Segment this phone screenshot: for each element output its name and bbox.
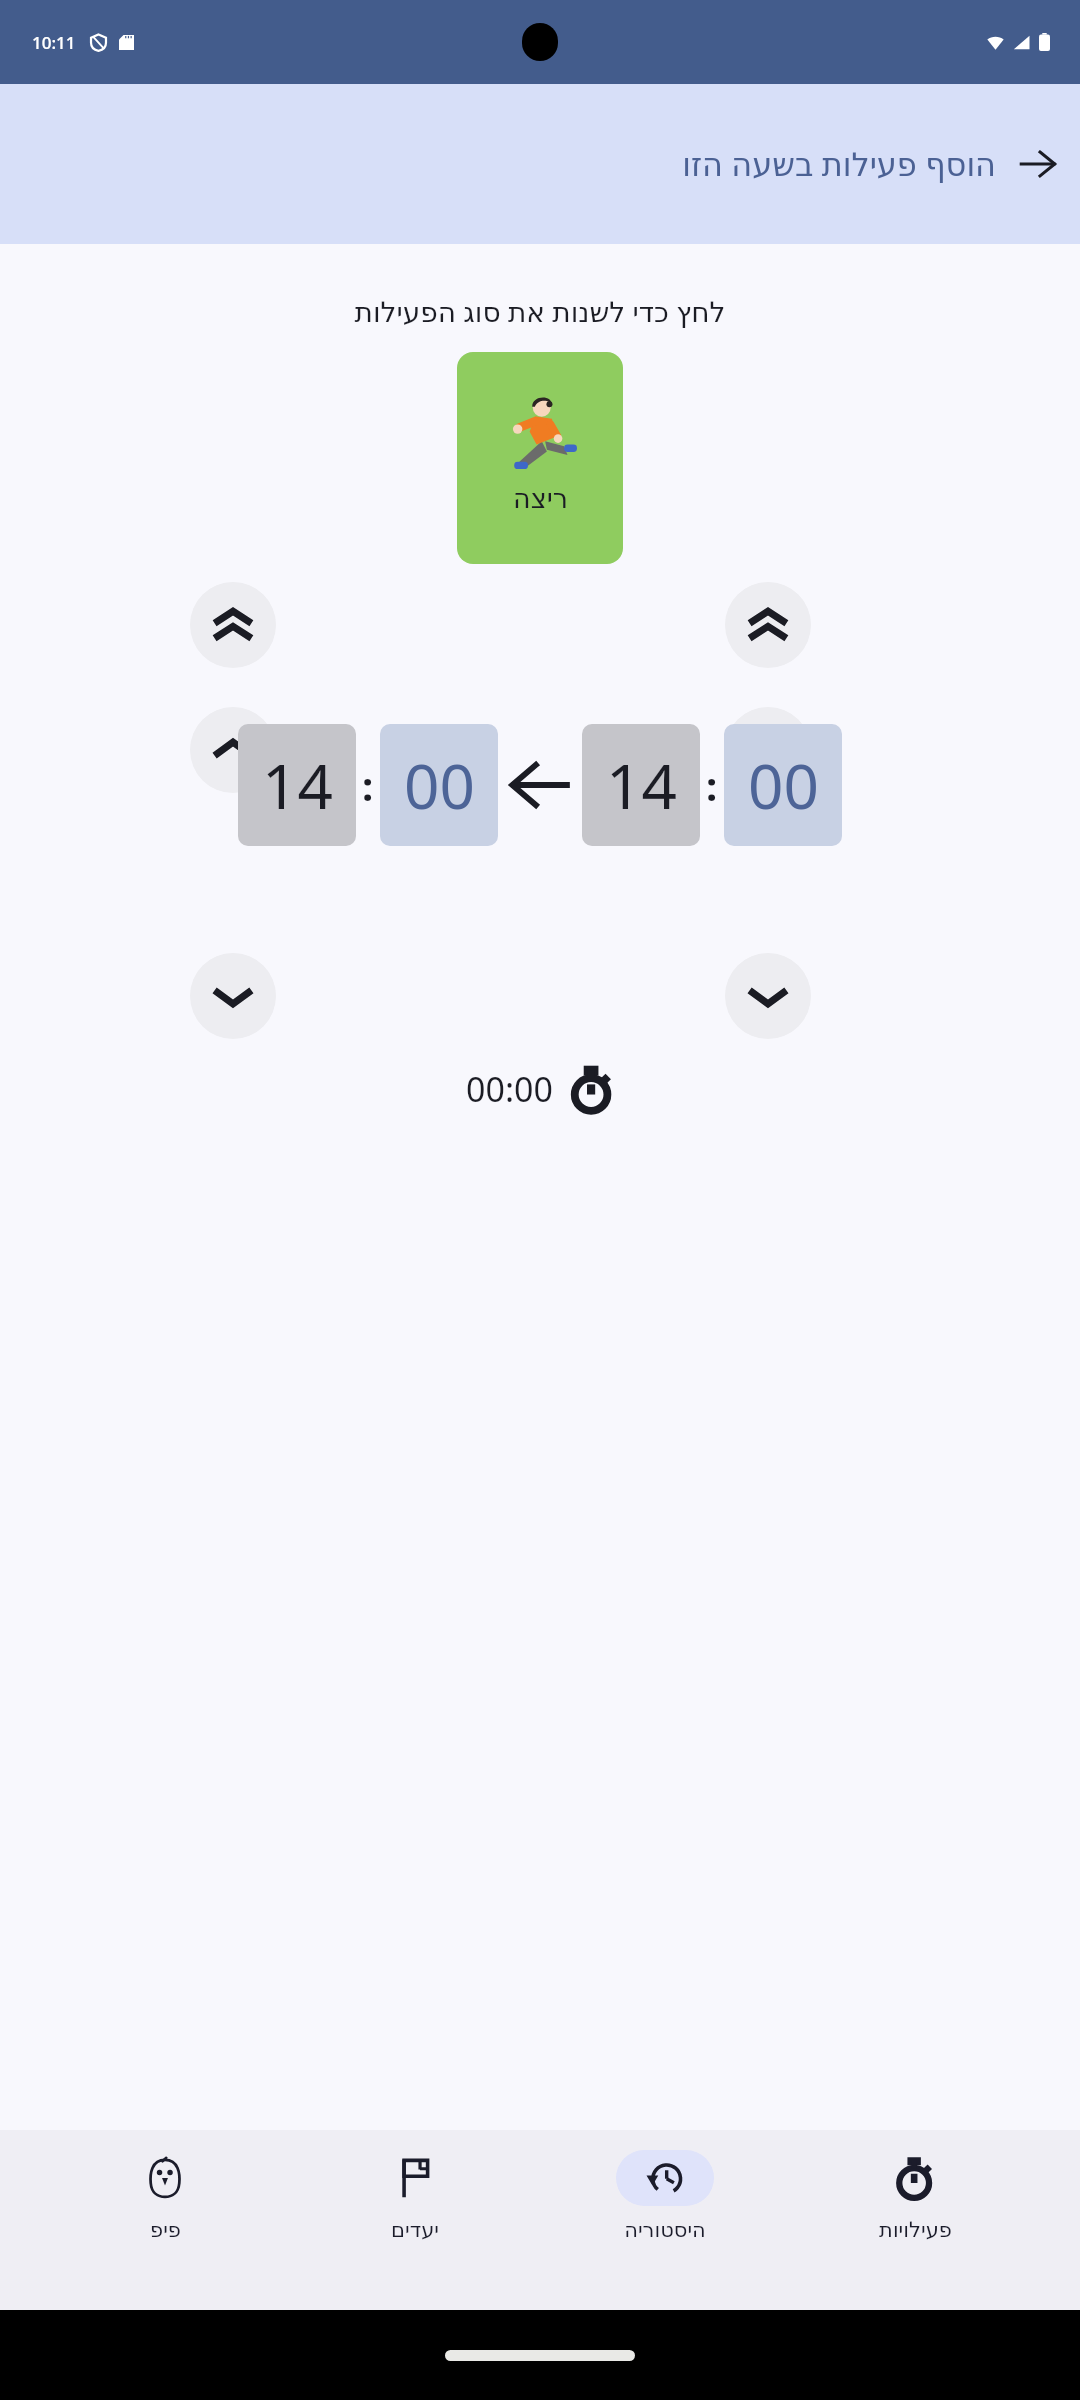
staticText: : [706, 758, 718, 812]
staticText: הוסף פעילות בשעה הזו [682, 142, 996, 186]
button[interactable]: יעדים [330, 2150, 500, 2242]
button[interactable]: Increase [725, 707, 811, 793]
button[interactable]: 00 [380, 724, 498, 846]
button[interactable]: Increase [190, 707, 276, 793]
staticText: 14 [262, 743, 333, 827]
button[interactable]: פעילויות [830, 2150, 1000, 2242]
staticText: 14 [606, 743, 677, 827]
button[interactable]: פיפ [80, 2150, 250, 2242]
staticText: 10:11 [32, 31, 76, 54]
button[interactable]: היסטוריה [580, 2150, 750, 2242]
staticText: 00 [748, 743, 819, 827]
button[interactable]: 14 [582, 724, 700, 846]
staticText: : [362, 758, 374, 812]
button[interactable]: Increase by 10 [725, 582, 811, 668]
button[interactable]: Decrease [190, 953, 276, 1039]
button[interactable]: ריצה [457, 352, 623, 564]
button[interactable]: 14 [238, 724, 356, 846]
button[interactable]: 00 [724, 724, 842, 846]
staticText: פיפ [150, 2218, 181, 2242]
button[interactable]: Decrease [725, 953, 811, 1039]
staticText: פעילויות [879, 2218, 952, 2242]
staticText: יעדים [391, 2218, 439, 2242]
button[interactable]: Increase by 10 [190, 582, 276, 668]
staticText: 00 [404, 743, 475, 827]
staticText: היסטוריה [624, 2218, 706, 2242]
staticText: לחץ כדי לשנות את סוג הפעילות [354, 292, 726, 330]
staticText: ריצה [513, 483, 568, 514]
button[interactable]: הוסף פעילות בשעה הזו [0, 84, 1080, 244]
staticText: 00:00 [466, 1066, 553, 1112]
other: Copy time [508, 757, 570, 813]
